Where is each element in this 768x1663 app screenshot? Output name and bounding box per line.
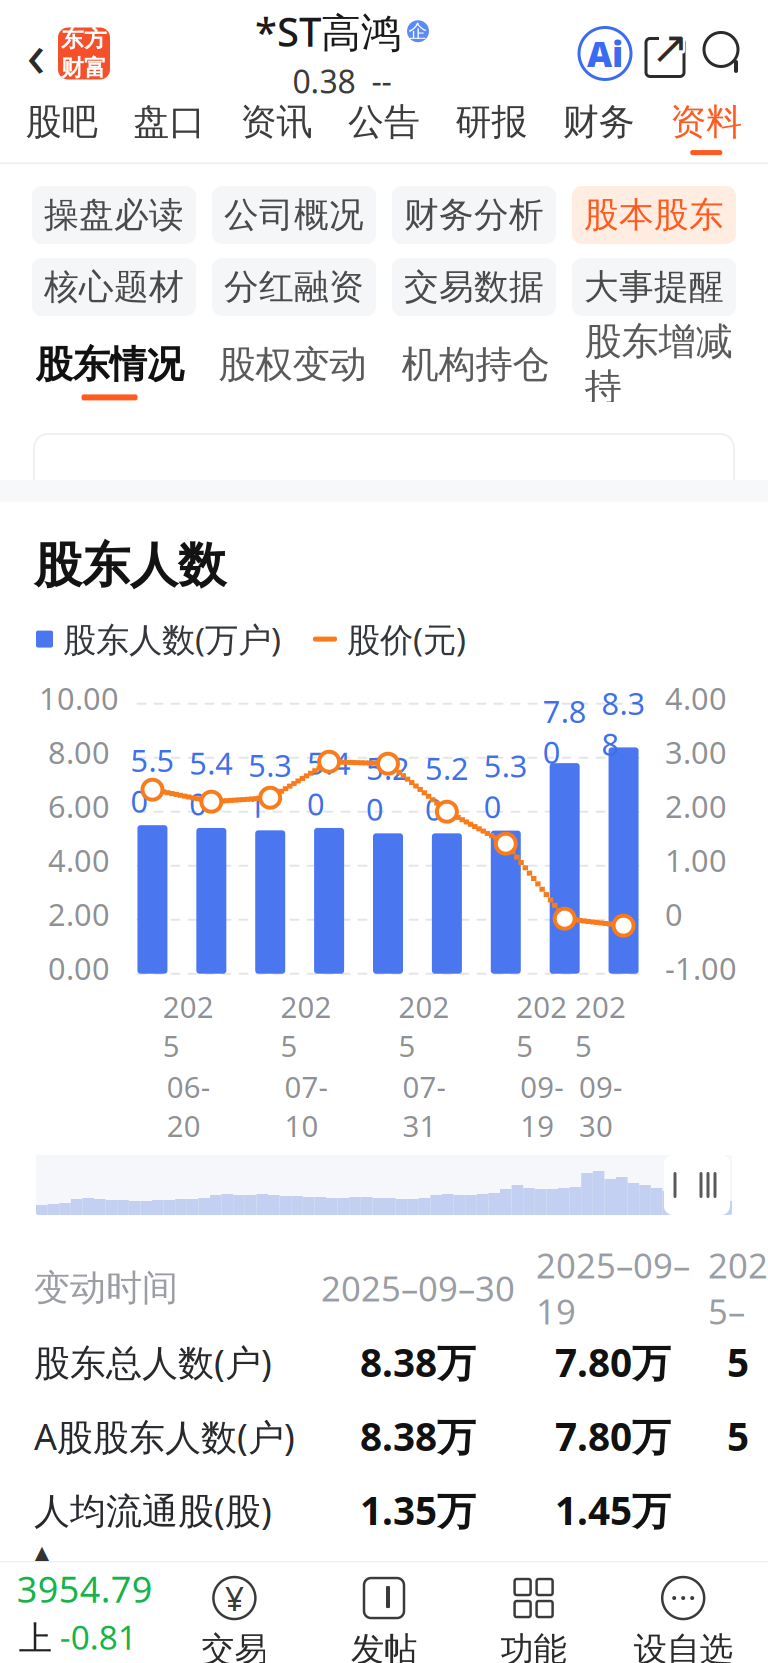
staticText: 大事提醒 [584,266,724,308]
staticText: 资料 [670,100,742,144]
button[interactable]: 研报 [438,92,545,162]
staticText: 5.20 [366,748,410,829]
staticText: 7.80万 [555,1410,671,1462]
button[interactable]: East Money home [58,27,110,79]
staticText: ▲ [35,1542,49,1563]
staticText: 2.00 [48,894,110,934]
button[interactable]: 操盘必读 [32,186,196,244]
staticText: 4.00 [48,840,110,880]
staticText: 2025 [163,987,214,1065]
button[interactable]: 设自选 [608,1575,758,1663]
staticText: 09-19 [520,1067,563,1145]
staticText: 5.20 [425,748,469,829]
button[interactable]: 资料 [653,92,760,162]
staticText: 交易 [201,1629,267,1663]
staticText: 2025 [575,987,626,1065]
staticText: A股股东人数(户) [34,1412,295,1460]
staticText: 3954.79 [17,1565,153,1613]
button[interactable]: 股吧 [8,92,115,162]
staticText: ¥ [225,1576,244,1620]
staticText: 2025 [516,987,567,1065]
button[interactable]: 分红融资 [212,258,376,316]
button[interactable]: Share [636,22,694,84]
staticText: 人均流通股(股) [34,1486,272,1534]
staticText: 功能 [501,1629,567,1663]
staticText: 5 [727,1336,749,1388]
staticText: 股吧 [26,100,98,144]
staticText: 企 [408,20,427,43]
button[interactable]: Shanghai Composite index [10,1542,160,1663]
button[interactable]: 功能 [459,1575,608,1663]
staticText: 盘口 [133,100,205,144]
button[interactable]: 发帖 [309,1575,459,1663]
staticText: 0.00 [48,948,110,988]
staticText: ‹ [26,13,45,94]
staticText: 5.40 [307,742,351,824]
button[interactable]: 大事提醒 [572,258,736,316]
staticText: 09-30 [579,1067,622,1145]
staticText: 10.00 [39,678,119,718]
staticText: 06-20 [167,1067,210,1145]
button[interactable]: ¥ [160,1575,309,1663]
staticText: 股东情况 [35,342,183,387]
staticText: -1.00 [665,948,737,988]
staticText: 股价(元) [347,617,466,661]
staticText: 交易数据 [404,266,544,308]
button[interactable]: Search [694,22,752,84]
staticText: 操盘必读 [44,194,184,236]
staticText: 上证 [19,1618,52,1663]
staticText: 财务分析 [404,194,544,236]
staticText: 2.00 [665,786,727,826]
button[interactable]: 公告 [330,92,438,162]
staticText: 1.45万 [555,1484,671,1536]
button[interactable]: 财务 [545,92,652,162]
staticText: 2025–09–19 [536,1242,690,1334]
staticText: 公告 [348,100,420,144]
button[interactable]: Back [14,18,58,88]
staticText: 核心题材 [44,266,184,308]
button[interactable]: 股东增减持 [567,340,750,402]
staticText: 财务 [563,100,635,144]
button[interactable]: 核心题材 [32,258,196,316]
staticText: 分红融资 [224,266,364,308]
staticText: 1.00 [665,840,727,880]
button[interactable]: 资讯 [223,92,330,162]
staticText: 2025–09–30 [321,1265,515,1311]
staticText: 8.38万 [360,1410,476,1462]
staticText: 股权变动 [218,342,366,387]
button[interactable]: 财务分析 [392,186,556,244]
staticText: 7.80 [543,691,587,772]
staticText: 股东增减持 [584,319,732,410]
staticText: Ai [587,30,623,76]
staticText: 股东总人数(户) [34,1338,272,1386]
staticText: 0 [665,894,683,934]
staticText: 研报 [455,100,527,144]
staticText: 0.38 -- [292,60,391,102]
button[interactable]: 机构持仓 [384,340,567,402]
button[interactable]: 股权变动 [201,340,384,402]
staticText: 财富 [61,54,107,82]
staticText: 2025 [281,987,332,1065]
staticText: 公司概况 [224,194,364,236]
button[interactable]: 公司概况 [212,186,376,244]
staticText: 8.38 [602,683,646,764]
staticText: 设自选 [634,1629,733,1663]
staticText: ↗ [651,22,689,73]
staticText: 5.31 [248,745,292,826]
staticText: 5.40 [189,742,233,824]
button[interactable]: 交易数据 [392,258,556,316]
staticText: 7.80万 [555,1336,671,1388]
button[interactable]: 股本股东 [572,186,736,244]
staticText: *ST高鸿 [255,5,401,58]
button[interactable]: 盘口 [115,92,223,162]
button[interactable]: AI assistant [574,22,636,84]
staticText: 07-10 [285,1067,328,1145]
staticText: 2025 [398,987,449,1065]
button[interactable]: 股东情况 [18,340,201,402]
staticText: 1.35万 [360,1484,476,1536]
staticText: 东方 [61,25,107,53]
